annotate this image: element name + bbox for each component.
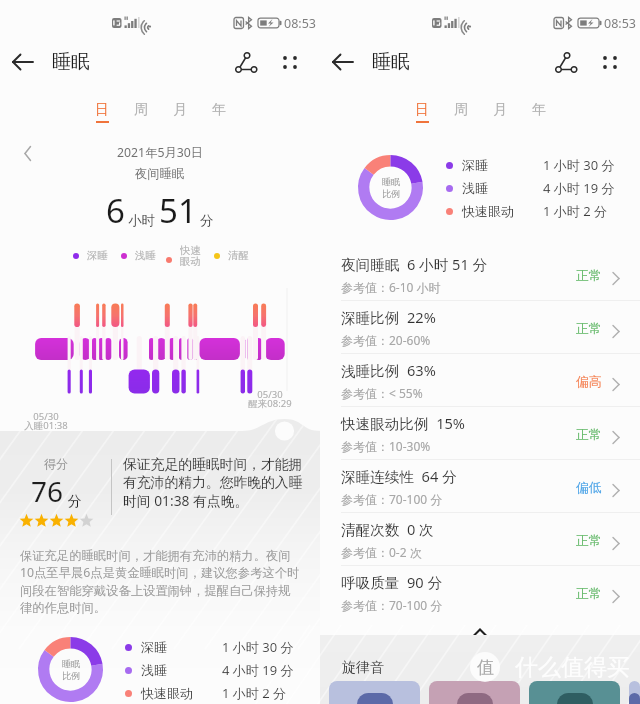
button[interactable]: 日 [402,101,441,130]
button[interactable] [329,681,420,704]
staticText: 正常 [576,321,602,337]
staticText: 睡眠 比例 [62,658,80,682]
button[interactable]: 深睡比例 22% [320,300,640,353]
button[interactable]: 呼吸质量 90 分 [320,565,640,618]
button[interactable]: Back [320,39,366,85]
staticText: 什么值得买 [515,653,630,682]
button[interactable] [429,681,520,704]
button[interactable]: More options [268,40,312,84]
button[interactable]: Previous day [20,144,36,160]
staticText: 保证充足的睡眠时间，才能拥有充沛的精力。您昨晚的入睡时间 01:38 有点晚。 [123,456,306,510]
staticText: 分 [200,212,214,229]
button[interactable] [629,681,640,704]
staticText: 得分 [44,456,68,471]
staticText: 夜间睡眠 [135,166,185,181]
button[interactable]: 周 [441,101,480,130]
button[interactable] [529,681,620,704]
staticText: 深睡 [87,249,108,262]
staticText: 参考值：10-30% [341,438,431,454]
staticText: 05/30 醒来08:29 [248,388,292,410]
staticText: 偏高 [576,374,602,390]
staticText: 月 [493,101,507,119]
button[interactable]: 年 [519,101,558,130]
staticText: 浅睡 [135,249,156,262]
staticText: 深睡连续性 64 分 [341,466,457,486]
staticText: 1 小时 2 分 [543,202,608,220]
staticText: 年 [212,101,226,119]
button[interactable]: Share [544,40,588,84]
staticText: 浅睡比例 63% [341,360,436,380]
staticText: 浅睡 [462,180,488,196]
staticText: 日 [95,101,109,119]
staticText: 深睡 [462,157,488,173]
staticText: 快速眼动 [462,203,514,219]
staticText: 正常 [576,427,602,443]
staticText: 4 小时 19 分 [543,179,615,197]
button[interactable]: More options [588,40,632,84]
button[interactable]: 清醒次数 0 次 [320,512,640,565]
button[interactable]: Collapse [320,618,640,652]
button[interactable]: 深睡连续性 64 分 [320,459,640,512]
staticText: 月 [173,101,187,119]
button[interactable]: 快速眼动比例 15% [320,406,640,459]
staticText: 6 [106,188,125,233]
staticText: 夜间睡眠 6 小时 51 分 [341,254,488,274]
staticText: 参考值：< 55% [341,385,423,401]
button[interactable]: 月 [160,101,199,130]
staticText: 76 [31,472,64,510]
staticText: 2021年5月30日 [117,144,204,160]
button[interactable]: 年 [199,101,238,130]
staticText: 05/30 入睡01:38 [24,410,68,432]
staticText: 睡眠 [52,50,90,74]
staticText: 分 [64,491,82,510]
staticText: 参考值：6-10 小时 [341,279,441,295]
staticText: 日 [415,101,429,119]
staticText: 51 [159,188,197,233]
staticText: 快速 眼动 [180,244,201,266]
staticText: 参考值：70-100 分 [341,597,443,613]
staticText: 清醒 [228,249,249,262]
staticText: 周 [134,101,148,119]
button[interactable]: 月 [480,101,519,130]
button[interactable]: Share [224,40,268,84]
staticText: 保证充足的睡眠时间，才能拥有充沛的精力。夜间10点至早晨6点是黄金睡眠时间，建议… [20,548,302,615]
staticText: 深睡 [141,639,167,655]
staticText: 快速眼动比例 15% [341,413,465,433]
button[interactable]: 周 [121,101,160,130]
staticText: 正常 [576,586,602,602]
staticText: 周 [454,101,468,119]
button[interactable]: 日 [82,101,121,130]
staticText: 深睡比例 22% [341,307,436,327]
staticText: 快速眼动 [141,685,193,701]
staticText: 小时 [128,212,155,229]
staticText: 1 小时 30 分 [222,638,294,656]
staticText: 偏低 [576,480,602,496]
staticText: 正常 [576,533,602,549]
staticText: 4 小时 19 分 [222,661,294,679]
staticText: 呼吸质量 90 分 [341,572,443,592]
button[interactable]: 夜间睡眠 6 小时 51 分 [320,247,640,300]
staticText: 值 [477,657,494,678]
staticText: 旋律音 [342,659,384,677]
staticText: 参考值：0-2 次 [341,544,422,560]
staticText: 睡眠 [372,50,410,74]
staticText: 参考值：70-100 分 [341,491,443,507]
staticText: 参考值：20-60% [341,332,431,348]
staticText: 浅睡 [141,662,167,678]
staticText: 1 小时 30 分 [543,156,615,174]
staticText: 年 [532,101,546,119]
staticText: 1 小时 2 分 [222,684,287,702]
staticText: 08:53 [604,15,636,32]
staticText: 08:53 [284,15,316,32]
staticText: 正常 [576,268,602,284]
staticText: 睡眠 比例 [382,176,400,200]
button[interactable]: Back [0,39,46,85]
button[interactable]: 浅睡比例 63% [320,353,640,406]
staticText: 清醒次数 0 次 [341,519,434,539]
